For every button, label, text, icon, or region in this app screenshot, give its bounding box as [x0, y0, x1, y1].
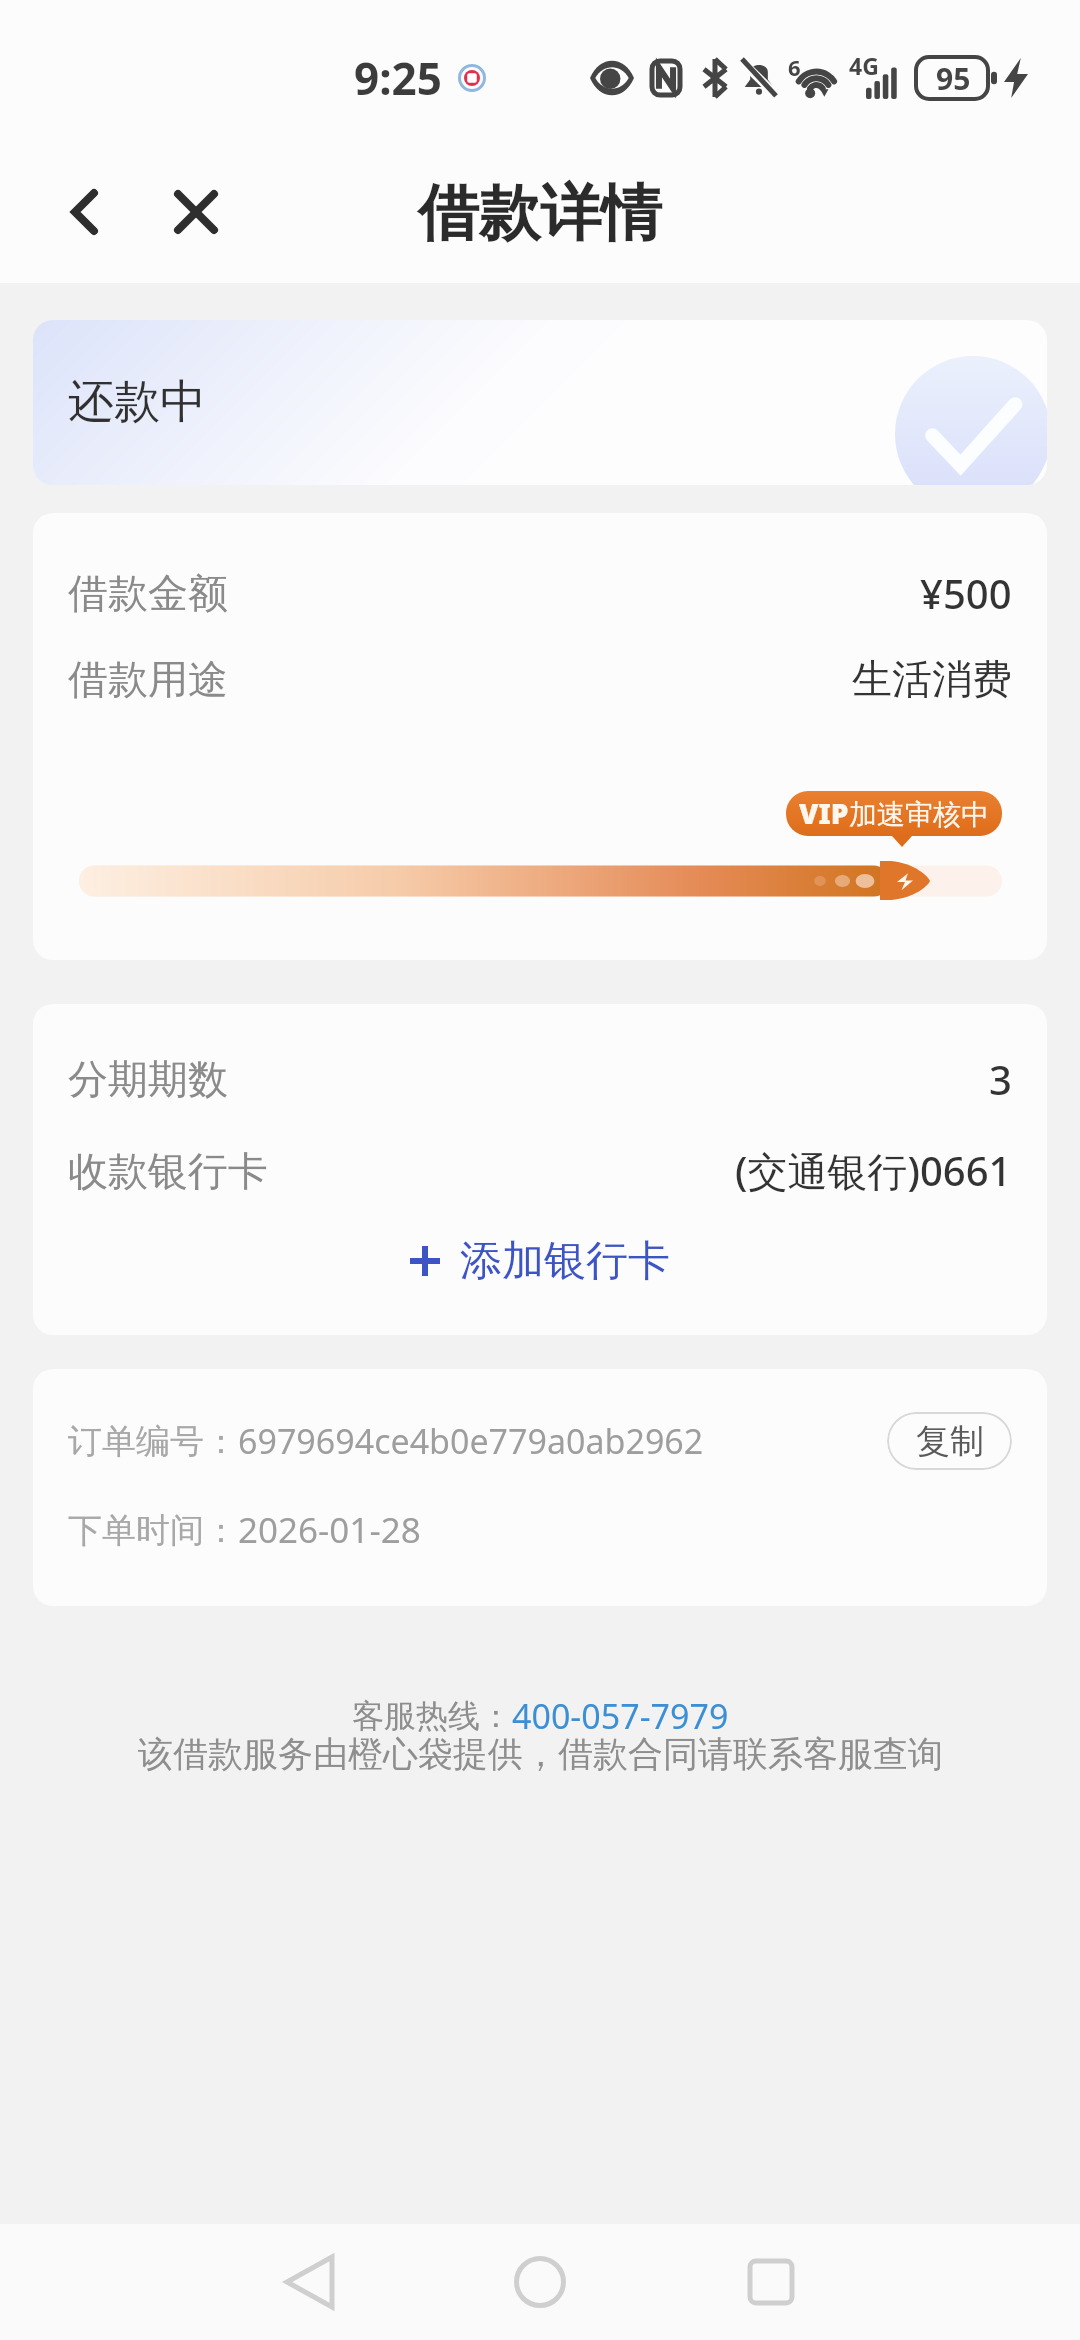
- staticText: 9:25: [354, 48, 442, 108]
- staticText: 3: [989, 1052, 1012, 1106]
- staticText: 复制: [916, 1420, 984, 1463]
- staticText: 6979694ce4b0e779a0ab2962: [238, 1418, 704, 1464]
- button[interactable]: Home: [492, 2234, 588, 2330]
- staticText: (交通银行)0661: [735, 1143, 1012, 1198]
- staticText: 借款用途: [68, 654, 228, 704]
- staticText: 收款银行卡: [68, 1146, 268, 1196]
- button[interactable]: 复制: [887, 1412, 1012, 1470]
- staticText: 还款中: [68, 373, 206, 431]
- button[interactable]: Recents: [723, 2234, 819, 2330]
- button[interactable]: Back: [261, 2234, 357, 2330]
- staticText: 借款详情: [418, 175, 662, 252]
- staticText: 4G: [849, 50, 879, 81]
- staticText: 该借款服务由橙心袋提供，借款合同请联系客服查询: [138, 1732, 943, 1776]
- button[interactable]: 400-057-7979: [512, 1693, 729, 1739]
- staticText: 订单编号：: [68, 1420, 238, 1463]
- staticText: 6: [788, 52, 801, 82]
- staticText: 借款金额: [68, 568, 228, 618]
- staticText: 添加银行卡: [460, 1235, 670, 1288]
- staticText: 2026-01-28: [238, 1506, 421, 1554]
- staticText: 生活消费: [852, 654, 1012, 704]
- staticText: VIP: [799, 794, 849, 832]
- staticText: 客服热线：: [352, 1696, 512, 1736]
- button[interactable]: Close: [152, 168, 240, 256]
- button[interactable]: Back: [40, 168, 128, 256]
- button[interactable]: 添加银行卡: [33, 1222, 1047, 1300]
- staticText: 下单时间：: [68, 1509, 238, 1552]
- staticText: 分期期数: [68, 1054, 228, 1104]
- staticText: 95: [936, 58, 971, 99]
- staticText: ¥500: [920, 566, 1012, 620]
- staticText: 400-057-7979: [512, 1693, 729, 1739]
- staticText: 加速审核中: [849, 797, 989, 832]
